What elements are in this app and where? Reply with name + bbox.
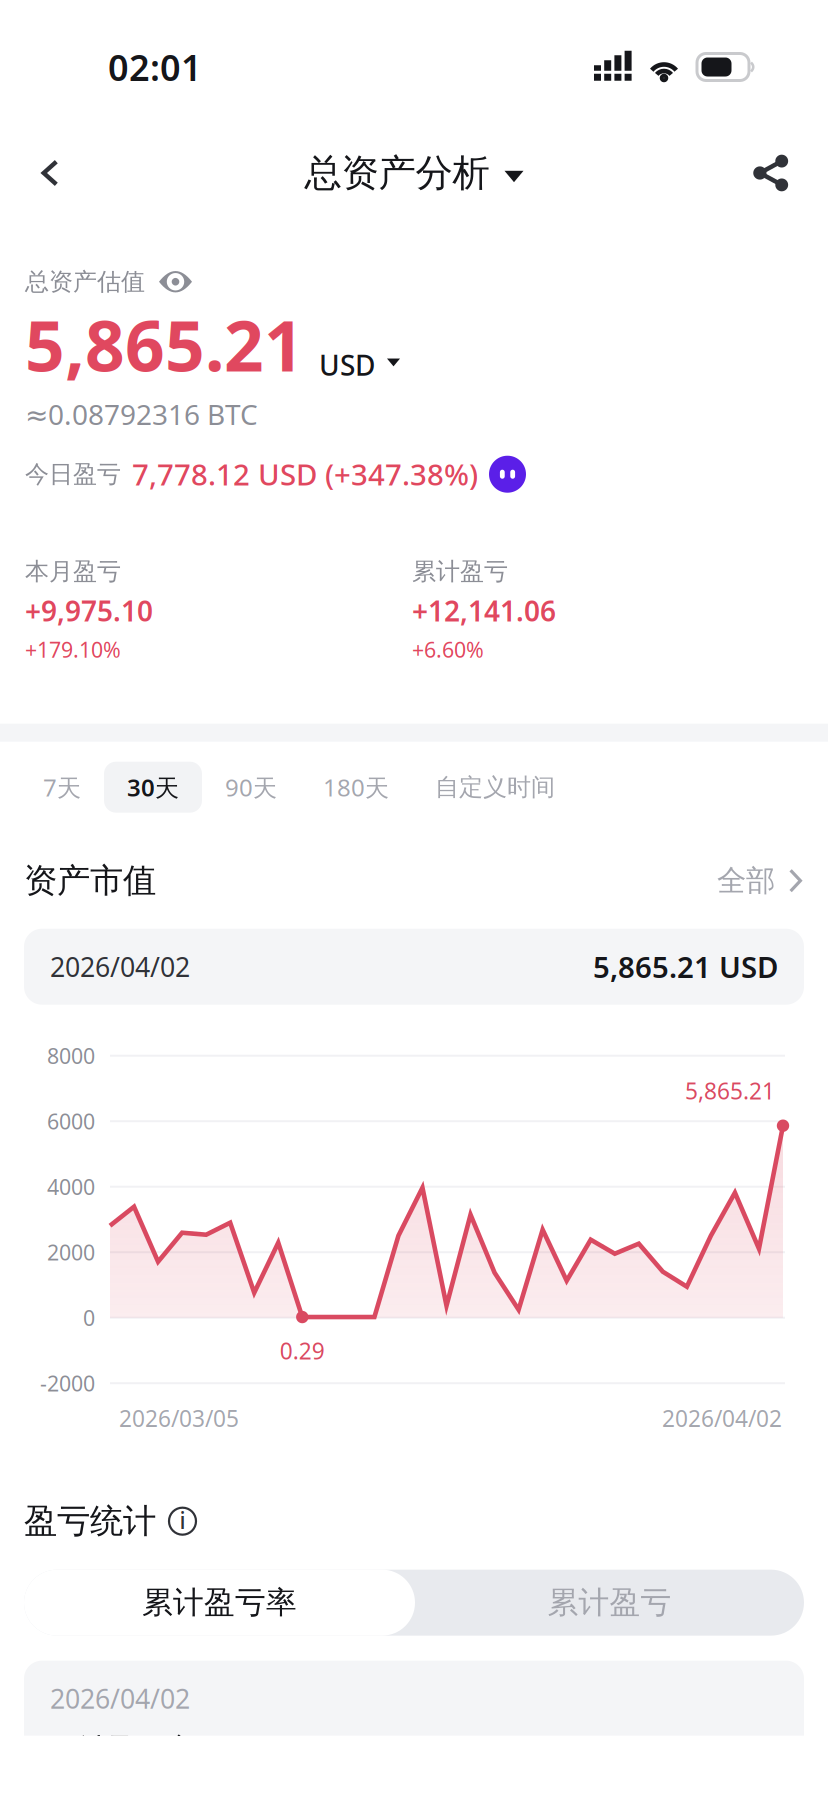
button[interactable]: 7天	[20, 762, 104, 813]
staticText: 4000	[47, 1172, 95, 1201]
button[interactable]: 全部	[717, 855, 802, 907]
staticText: 0.29	[280, 1336, 325, 1366]
staticText: 累计盈亏率	[50, 1731, 195, 1767]
button[interactable]: 累计盈亏率	[24, 1570, 415, 1636]
staticText: 180天	[323, 771, 389, 803]
staticText: +12,141.06	[412, 592, 556, 629]
staticText: 0	[83, 1303, 95, 1332]
staticText: -2000	[40, 1369, 95, 1397]
button[interactable]: About profit statistics	[169, 1508, 196, 1535]
staticText: 累计盈亏	[547, 1584, 671, 1621]
staticText: 2026/04/02	[50, 949, 190, 984]
button[interactable]: USD	[304, 346, 400, 391]
staticText: 8000	[47, 1041, 95, 1070]
staticText: 90天	[225, 771, 277, 803]
staticText: 累计盈亏率	[142, 1584, 297, 1621]
staticText: 全部	[717, 863, 775, 899]
button[interactable]: Back	[8, 131, 92, 215]
staticText: -37.31%	[667, 1730, 778, 1769]
staticText: +9,975.10	[25, 592, 153, 629]
button[interactable]: Share	[729, 131, 813, 215]
staticText: ≈0.08792316 BTC	[25, 395, 258, 433]
staticText: +179.10%	[25, 635, 121, 664]
button[interactable]: 90天	[202, 762, 300, 813]
staticText: 5,865.21 USD	[593, 947, 778, 986]
staticText: 总资产估值	[25, 267, 145, 296]
staticText: 自定义时间	[435, 772, 555, 802]
staticText: 6000	[47, 1107, 95, 1135]
staticText: 30天	[127, 771, 179, 803]
button[interactable]: 总资产分析	[284, 131, 543, 215]
staticText: 累计盈亏	[412, 557, 508, 586]
staticText: 今日盈亏	[25, 459, 121, 489]
staticText: 盈亏统计	[24, 1501, 156, 1542]
staticText: 2026/04/02	[662, 1403, 782, 1433]
staticText: 2026/03/05	[119, 1403, 239, 1433]
staticText: 总资产分析	[304, 150, 489, 196]
staticText: 5,865.21	[25, 298, 304, 391]
button[interactable]: 累计盈亏	[415, 1570, 804, 1636]
staticText: i	[179, 1505, 185, 1535]
button[interactable]: Hide total value	[25, 267, 192, 296]
staticText: 7,778.12 USD (+347.38%)	[132, 455, 478, 494]
staticText: +6.60%	[412, 635, 484, 664]
button[interactable]: 30天	[104, 762, 202, 813]
staticText: 2026/04/02	[50, 1681, 190, 1716]
button[interactable]: 自定义时间	[412, 762, 578, 813]
staticText: 资产市值	[24, 860, 156, 901]
staticText: 本月盈亏	[25, 557, 121, 586]
staticText: 02:01	[108, 43, 202, 91]
staticText: 7天	[43, 771, 81, 803]
button[interactable]: 180天	[300, 762, 412, 813]
staticText: USD	[319, 346, 375, 384]
staticText: 2000	[47, 1238, 95, 1266]
staticText: 5,865.21	[685, 1076, 775, 1106]
